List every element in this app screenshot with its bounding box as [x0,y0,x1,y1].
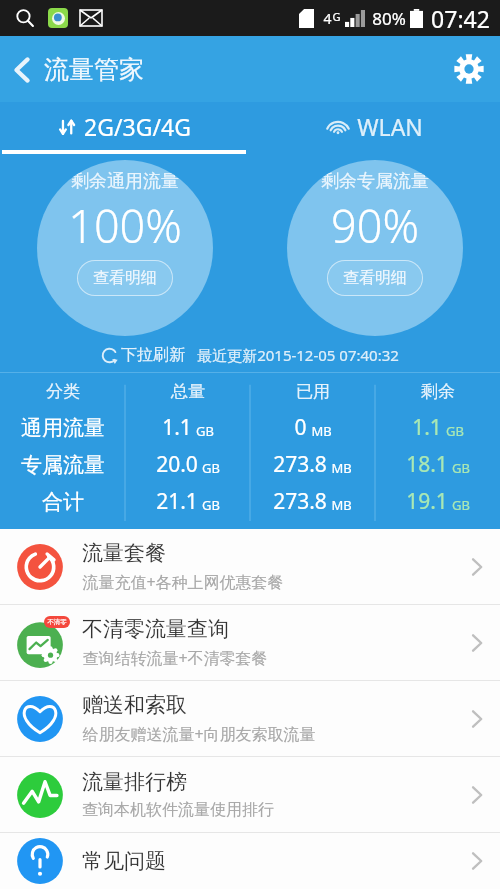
staticText: 100% [68,195,182,256]
staticText: 查询本机软件流量使用排行 [82,800,274,820]
staticText: 剩余 [421,381,455,402]
staticText: 流量排行榜 [82,769,187,795]
staticText: 2G/3G/4G [84,111,191,142]
staticText: 1.1 [412,413,442,442]
other: Open 赠送和索取 [470,707,484,731]
staticText: GB [446,422,464,440]
staticText: 19.1 [406,487,448,516]
staticText: 07:42 [431,3,490,34]
button[interactable]: Back [0,46,156,93]
staticText: 不清零 [47,618,67,626]
staticText: 查看明细 [343,268,407,288]
other: Open 流量套餐 [470,555,484,579]
button[interactable]: 流量套餐 [0,529,500,604]
button[interactable]: Settings [438,40,500,98]
staticText: 剩余通用流量 [71,170,179,193]
staticText: 90% [331,195,419,256]
staticText: GB [196,422,214,440]
staticText: 1.1 [162,413,192,442]
other: Open 不清零流量查询 [470,631,484,655]
other: Open 常见问题 [470,849,484,873]
staticText: 最近更新2015-12-05 07:40:32 [197,345,399,365]
button[interactable]: 下拉刷新 [0,338,500,372]
staticText: 专属流量 [21,452,105,478]
button[interactable]: 常见问题 [0,833,500,889]
button[interactable]: 流量排行榜 [0,757,500,832]
staticText: MB [331,459,352,477]
staticText: MB [331,496,352,514]
staticText: G [332,9,341,24]
staticText: 已用 [296,381,330,402]
staticText: 流量套餐 [82,540,166,566]
button[interactable]: 查看明细 [77,260,173,296]
staticText: GB [452,459,470,477]
staticText: 273.8 [273,450,327,479]
staticText: GB [202,496,220,514]
staticText: 合计 [42,489,84,515]
staticText: 21.1 [156,487,198,516]
staticText: 80% [372,7,406,30]
staticText: 常见问题 [82,848,166,874]
staticText: MB [311,422,332,440]
staticText: 查询结转流量+不清零套餐 [82,647,268,669]
staticText: 18.1 [406,450,448,479]
button[interactable]: 查看明细 [327,260,423,296]
button[interactable]: 2G/3G/4G [0,102,250,150]
staticText: 20.0 [156,450,198,479]
button[interactable]: WLAN [250,102,500,150]
button[interactable]: 剩余通用流量 [37,160,213,336]
button[interactable]: 赠送和索取 [0,681,500,756]
staticText: GB [202,459,220,477]
staticText: 总量 [171,381,205,402]
staticText: 给朋友赠送流量+向朋友索取流量 [82,723,316,745]
other: Open 流量排行榜 [470,783,484,807]
staticText: 0 [294,413,307,442]
staticText: 赠送和索取 [82,692,187,718]
staticText: WLAN [357,111,423,142]
staticText: 分类 [46,381,80,402]
button[interactable]: 剩余专属流量 [287,160,463,336]
other: Back [12,56,32,84]
staticText: 273.8 [273,487,327,516]
staticText: 通用流量 [21,415,105,441]
staticText: GB [452,496,470,514]
staticText: 流量管家 [44,54,144,85]
staticText: 不清零流量查询 [82,616,229,642]
staticText: 下拉刷新 [121,345,185,365]
staticText: 剩余专属流量 [321,170,429,193]
button[interactable]: 不清零 [0,605,500,680]
staticText: 4 [323,9,332,28]
staticText: 流量充值+各种上网优惠套餐 [82,571,284,593]
staticText: 查看明细 [93,268,157,288]
